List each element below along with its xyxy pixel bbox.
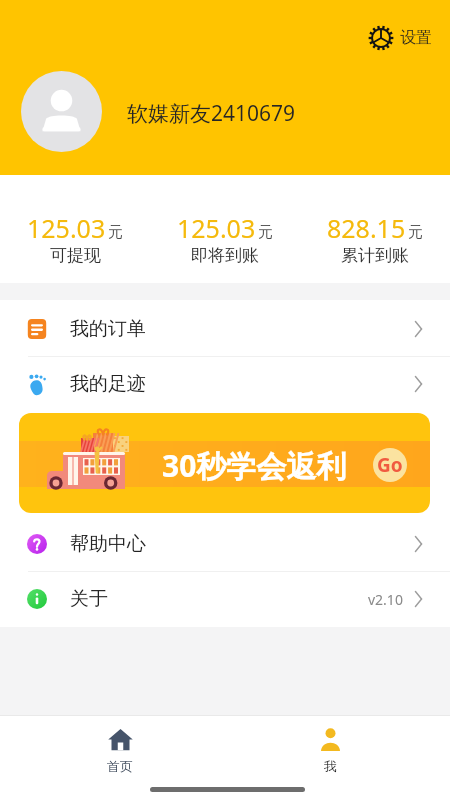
button[interactable]: 我的订单 bbox=[0, 302, 450, 356]
staticText: 累计到账 bbox=[341, 245, 409, 266]
button[interactable]: 关于 bbox=[0, 572, 450, 626]
staticText: Go bbox=[377, 452, 403, 478]
button[interactable]: 125.03 bbox=[150, 211, 300, 266]
staticText: 30秒学会返利 bbox=[162, 445, 347, 486]
button[interactable]: 帮助中心 bbox=[0, 517, 450, 571]
staticText: 即将到账 bbox=[191, 245, 259, 266]
staticText: v2.10 bbox=[368, 590, 403, 609]
staticText: 元 bbox=[258, 223, 273, 242]
staticText: 125.03 bbox=[177, 211, 256, 245]
staticText: 125.03 bbox=[27, 211, 106, 245]
button[interactable]: 首页 bbox=[95, 716, 145, 774]
staticText: 关于 bbox=[70, 587, 108, 611]
button[interactable]: Go bbox=[373, 448, 407, 482]
button[interactable] bbox=[21, 71, 102, 152]
staticText: 可提现 bbox=[50, 245, 101, 266]
staticText: 元 bbox=[408, 223, 423, 242]
button[interactable]: 828.15 bbox=[300, 211, 450, 266]
staticText: 设置 bbox=[400, 28, 432, 48]
staticText: 首页 bbox=[107, 758, 133, 774]
staticText: 元 bbox=[108, 223, 123, 242]
staticText: 软媒新友2410679 bbox=[127, 99, 296, 128]
button[interactable]: Settings bbox=[365, 22, 436, 54]
staticText: 828.15 bbox=[327, 211, 406, 245]
button[interactable]: 我的足迹 bbox=[0, 357, 450, 411]
staticText: 我的足迹 bbox=[70, 372, 146, 396]
other: Settings bbox=[369, 26, 393, 50]
staticText: 帮助中心 bbox=[70, 532, 146, 556]
button[interactable]: 30秒学会返利 bbox=[19, 413, 430, 513]
staticText: 我 bbox=[324, 758, 337, 774]
button[interactable]: 125.03 bbox=[0, 211, 150, 266]
staticText: 我的订单 bbox=[70, 317, 146, 341]
button[interactable]: 我 bbox=[305, 716, 355, 774]
